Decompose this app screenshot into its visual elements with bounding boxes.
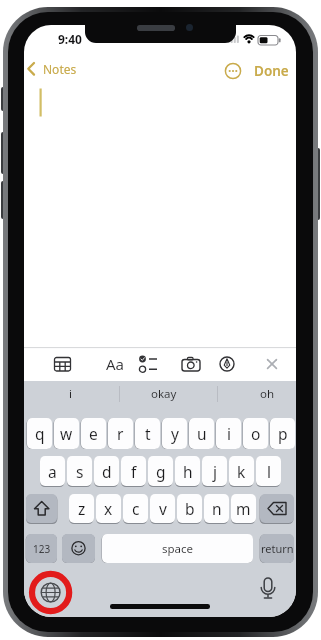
button[interactable]: i xyxy=(55,384,85,404)
button[interactable]: l xyxy=(256,456,281,486)
button[interactable]: c xyxy=(123,494,148,523)
button[interactable] xyxy=(179,352,203,376)
button[interactable] xyxy=(62,534,95,563)
staticText: h xyxy=(183,461,193,482)
staticText: q xyxy=(35,423,45,444)
button[interactable]: Done xyxy=(252,62,290,79)
button[interactable] xyxy=(135,352,159,376)
staticText: x xyxy=(104,498,113,519)
button[interactable] xyxy=(50,352,75,376)
staticText: Done xyxy=(254,62,289,79)
staticText: p xyxy=(278,423,288,444)
staticText: s xyxy=(76,461,84,482)
button[interactable]: h xyxy=(175,456,200,486)
button[interactable]: k xyxy=(229,456,254,486)
staticText: t xyxy=(145,423,151,444)
button[interactable]: n xyxy=(204,494,229,523)
staticText: a xyxy=(48,461,57,482)
staticText: b xyxy=(185,498,195,519)
button[interactable] xyxy=(254,571,282,601)
button[interactable] xyxy=(215,352,239,376)
staticText: j xyxy=(213,461,217,482)
staticText: oh xyxy=(260,386,275,402)
staticText: Aa xyxy=(106,354,125,374)
staticText: 9:40 xyxy=(58,31,82,45)
button[interactable]: q xyxy=(27,418,52,449)
staticText: z xyxy=(78,498,86,519)
staticText: d xyxy=(102,461,112,482)
button[interactable]: d xyxy=(94,456,119,486)
button[interactable]: m xyxy=(231,494,256,523)
staticText: n xyxy=(212,498,222,519)
button[interactable] xyxy=(24,59,38,83)
button[interactable]: space xyxy=(102,534,253,563)
button[interactable]: p xyxy=(270,418,295,449)
button[interactable]: z xyxy=(69,494,94,523)
button[interactable]: x xyxy=(96,494,121,523)
button[interactable]: j xyxy=(202,456,227,486)
button[interactable]: 123 xyxy=(26,534,57,563)
staticText: f xyxy=(131,461,137,482)
button[interactable]: Aa xyxy=(98,354,132,374)
button[interactable]: g xyxy=(148,456,173,486)
staticText: m xyxy=(236,498,251,519)
staticText: v xyxy=(159,498,167,519)
button[interactable] xyxy=(260,352,284,376)
staticText: Notes xyxy=(43,61,77,77)
staticText: c xyxy=(132,498,140,519)
staticText: i xyxy=(227,423,231,444)
button[interactable]: e xyxy=(81,418,106,449)
button[interactable]: Notes xyxy=(36,61,84,77)
button[interactable]: r xyxy=(108,418,133,449)
staticText: i xyxy=(69,386,72,402)
staticText: o xyxy=(251,423,261,444)
button[interactable] xyxy=(26,494,57,523)
staticText: return xyxy=(261,541,294,556)
staticText: r xyxy=(117,423,124,444)
staticText: okay xyxy=(151,386,177,402)
button[interactable]: s xyxy=(67,456,92,486)
button[interactable]: w xyxy=(54,418,79,449)
button[interactable]: b xyxy=(177,494,202,523)
button[interactable]: t xyxy=(135,418,160,449)
button[interactable]: oh xyxy=(252,384,282,404)
button[interactable]: i xyxy=(216,418,241,449)
button[interactable]: y xyxy=(162,418,187,449)
button[interactable]: f xyxy=(121,456,146,486)
staticText: w xyxy=(60,423,73,444)
button[interactable]: o xyxy=(243,418,268,449)
button[interactable] xyxy=(222,60,244,82)
staticText: y xyxy=(171,423,179,444)
staticText: u xyxy=(197,423,207,444)
button[interactable]: a xyxy=(40,456,65,486)
button[interactable]: return xyxy=(260,534,294,563)
staticText: l xyxy=(267,461,271,482)
staticText: 123 xyxy=(33,542,51,556)
button[interactable] xyxy=(260,494,294,523)
staticText: k xyxy=(237,461,246,482)
staticText: e xyxy=(89,423,98,444)
button[interactable]: u xyxy=(189,418,214,449)
button[interactable]: okay xyxy=(148,384,179,404)
staticText: g xyxy=(156,461,166,482)
button[interactable]: v xyxy=(150,494,175,523)
staticText: space xyxy=(162,541,194,557)
button[interactable] xyxy=(32,574,70,612)
